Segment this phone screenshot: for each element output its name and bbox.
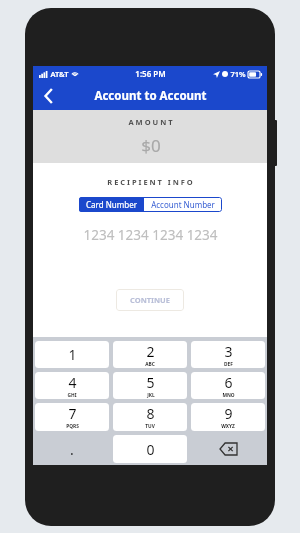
- staticText: 8: [146, 404, 155, 423]
- staticText: Account Number: [151, 199, 215, 210]
- staticText: 4: [68, 373, 77, 392]
- button[interactable]: 0: [113, 435, 187, 463]
- staticText: Account to Account: [94, 88, 207, 104]
- button[interactable]: 6: [191, 372, 265, 399]
- staticText: AT&T: [50, 69, 69, 79]
- staticText: 7: [68, 404, 77, 423]
- staticText: 1:56 PM: [135, 68, 166, 79]
- button[interactable]: 7: [35, 403, 109, 431]
- button[interactable]: 4: [35, 372, 109, 399]
- staticText: WXYZ: [221, 423, 235, 430]
- staticText: 71%: [230, 69, 246, 79]
- staticText: Card Number: [86, 199, 137, 210]
- button[interactable]: Card Number: [79, 197, 144, 212]
- staticText: CONTINUE: [130, 295, 170, 305]
- button[interactable]: 9: [191, 403, 265, 431]
- staticText: TUV: [145, 423, 155, 430]
- button[interactable]: 3: [191, 341, 265, 368]
- staticText: 9: [224, 404, 233, 423]
- staticText: $0: [141, 134, 161, 157]
- button[interactable]: Back: [38, 85, 60, 107]
- button[interactable]: 8: [113, 403, 187, 431]
- staticText: 5: [146, 373, 155, 392]
- staticText: A M O U N T: [128, 117, 173, 127]
- staticText: GHI: [67, 392, 77, 399]
- staticText: ABC: [145, 361, 155, 368]
- staticText: 6: [224, 373, 233, 392]
- staticText: 1234 1234 1234 1234: [83, 226, 218, 244]
- button[interactable]: A M O U N T: [33, 110, 267, 163]
- button[interactable]: Account Number: [144, 197, 222, 212]
- staticText: .: [70, 440, 74, 459]
- staticText: 3: [224, 342, 233, 361]
- staticText: 1: [68, 345, 77, 364]
- button[interactable]: 5: [113, 372, 187, 399]
- button[interactable]: 1: [35, 341, 109, 368]
- staticText: 2: [146, 342, 155, 361]
- staticText: 0: [146, 440, 155, 459]
- staticText: PQRS: [66, 423, 79, 430]
- button[interactable]: 2: [113, 341, 187, 368]
- button[interactable]: Delete: [191, 435, 265, 463]
- button[interactable]: CONTINUE: [116, 289, 184, 311]
- button[interactable]: .: [35, 435, 109, 463]
- staticText: MNO: [222, 392, 235, 399]
- staticText: DEF: [224, 361, 233, 368]
- staticText: JKL: [147, 392, 155, 399]
- staticText: R E C I P I E N T I N F O: [107, 177, 193, 187]
